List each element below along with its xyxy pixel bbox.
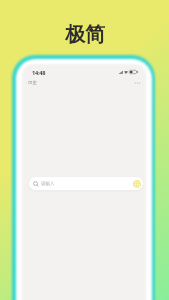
button[interactable]: 请输入 <box>29 177 143 190</box>
staticText: 请输入 <box>41 181 55 187</box>
staticText: 极简 <box>65 22 105 47</box>
button[interactable]: Scan <box>133 180 141 188</box>
button[interactable]: 历史 <box>28 80 37 86</box>
staticText: 14:48 <box>32 69 46 77</box>
button[interactable]: More options <box>130 76 144 90</box>
